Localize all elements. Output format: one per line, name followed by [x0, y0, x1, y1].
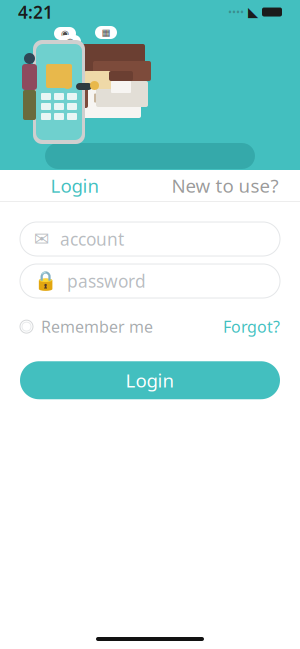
- button[interactable]: Remember me: [20, 310, 153, 343]
- staticText: New to use?: [171, 173, 278, 198]
- button[interactable]: Login: [0, 170, 150, 201]
- staticText: 4:21: [18, 0, 53, 23]
- staticText: ◉: [61, 28, 69, 39]
- button[interactable]: New to use?: [150, 170, 300, 201]
- staticText: ▦: [101, 27, 110, 38]
- staticText: Login: [125, 368, 174, 393]
- staticText: account: [60, 227, 124, 250]
- staticText: password: [67, 269, 146, 292]
- staticText: Login: [50, 173, 99, 198]
- button[interactable]: Forgot?: [223, 310, 280, 343]
- staticText: Forgot?: [223, 316, 280, 337]
- staticText: Remember me: [41, 316, 153, 337]
- staticText: ••••: [228, 5, 244, 19]
- staticText: 🔒: [34, 270, 57, 292]
- staticText: ◍: [66, 36, 74, 47]
- staticText: ◣: [248, 4, 258, 19]
- staticText: ✉: [34, 228, 50, 250]
- button[interactable]: Login: [20, 361, 280, 399]
